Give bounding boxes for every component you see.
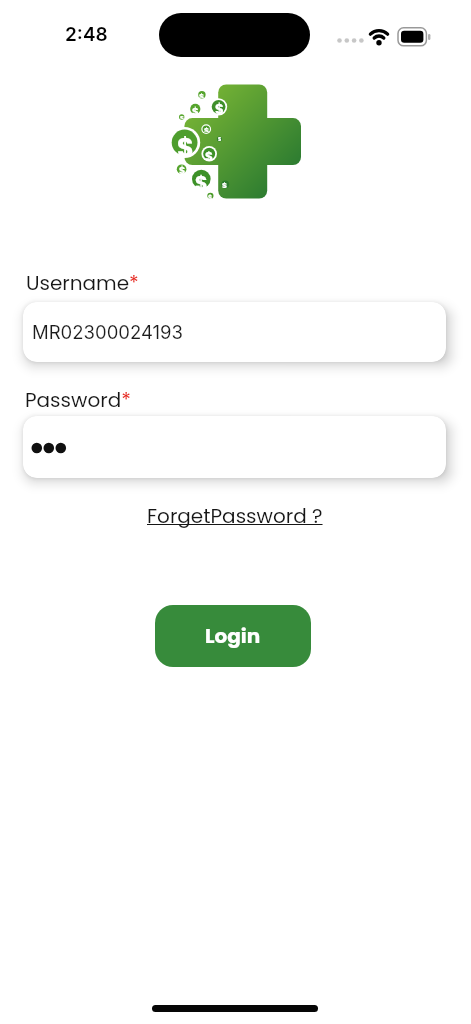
staticText: $: [204, 125, 210, 132]
staticText: $: [222, 180, 228, 188]
staticText: $: [205, 148, 214, 160]
staticText: $: [195, 170, 208, 189]
staticText: $: [208, 193, 213, 199]
button[interactable]: [23, 416, 446, 478]
staticText: $: [215, 100, 224, 114]
staticText: $: [199, 91, 205, 98]
button[interactable]: MR02300024193: [23, 302, 446, 362]
staticText: $: [180, 114, 184, 119]
staticText: $: [192, 104, 199, 114]
staticText: $: [177, 130, 194, 156]
staticText: MR02300024193: [32, 321, 184, 343]
button[interactable]: Login: [155, 605, 311, 667]
staticText: $: [218, 136, 222, 141]
button[interactable]: ForgetPassword ?: [140, 498, 330, 534]
staticText: ForgetPassword ?: [147, 502, 323, 530]
staticText: $: [179, 164, 186, 174]
staticText: Username*: [26, 269, 139, 297]
staticText: Login: [205, 622, 261, 650]
staticText: 2:48: [65, 23, 108, 46]
staticText: Password*: [25, 386, 131, 414]
